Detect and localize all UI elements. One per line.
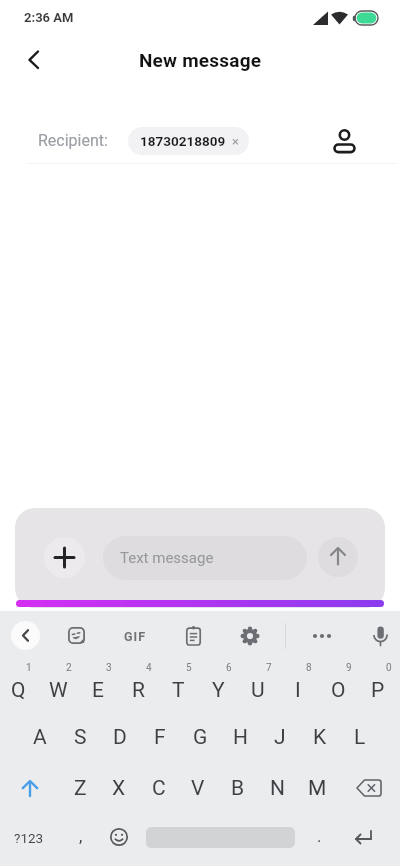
button[interactable]: W — [38, 667, 78, 713]
button[interactable]: M — [297, 765, 337, 811]
staticText: O — [331, 678, 346, 703]
staticText: F — [154, 725, 166, 750]
button[interactable]: Y — [198, 667, 238, 713]
button[interactable]: Q — [0, 667, 38, 713]
staticText: Text message — [120, 549, 214, 567]
button[interactable]: D — [100, 714, 140, 760]
staticText: 4 — [146, 662, 152, 674]
staticText: ?123 — [14, 830, 44, 846]
staticText: J — [274, 725, 286, 750]
staticText: 3 — [106, 662, 112, 674]
staticText: C — [152, 776, 166, 801]
staticText: Q — [11, 678, 26, 703]
button[interactable] — [348, 824, 378, 850]
button[interactable]: O — [318, 667, 358, 713]
button[interactable] — [366, 622, 394, 650]
button[interactable]: A — [20, 714, 60, 760]
button[interactable]: K — [300, 714, 340, 760]
button[interactable]: E — [78, 667, 118, 713]
button[interactable] — [62, 621, 90, 649]
button[interactable]: Z — [60, 765, 100, 811]
staticText: 1 — [26, 662, 32, 674]
staticText: K — [313, 725, 327, 750]
button[interactable]: B — [218, 765, 258, 811]
button[interactable]: J — [260, 714, 300, 760]
button[interactable]: F — [140, 714, 180, 760]
staticText: × — [232, 134, 239, 149]
staticText: 7 — [266, 662, 272, 674]
staticText: Z — [74, 776, 87, 801]
staticText: . — [317, 826, 322, 846]
button[interactable] — [15, 773, 45, 803]
button[interactable]: Text message — [103, 536, 307, 580]
staticText: 2 — [66, 662, 72, 674]
button[interactable]: V — [178, 765, 218, 811]
staticText: 9 — [346, 662, 352, 674]
staticText: E — [92, 678, 104, 703]
staticText: N — [270, 776, 285, 801]
button[interactable] — [18, 44, 50, 76]
button[interactable]: R — [118, 667, 158, 713]
button[interactable] — [308, 622, 336, 650]
button[interactable] — [318, 537, 358, 577]
staticText: V — [191, 776, 205, 801]
button[interactable] — [11, 621, 40, 650]
button[interactable]: G — [180, 714, 220, 760]
staticText: 0 — [386, 662, 392, 674]
button[interactable] — [236, 622, 264, 650]
staticText: G — [193, 725, 208, 750]
staticText: , — [79, 826, 83, 846]
staticText: L — [354, 725, 366, 750]
staticText: 6 — [226, 662, 232, 674]
staticText: D — [113, 725, 127, 750]
staticText: H — [233, 725, 248, 750]
button[interactable]: U — [238, 667, 278, 713]
staticText: U — [251, 678, 265, 703]
staticText: 18730218809 — [140, 133, 226, 149]
staticText: New message — [139, 49, 262, 71]
button[interactable]: P — [358, 667, 398, 713]
button[interactable]: X — [99, 765, 139, 811]
button[interactable]: 18730218809 — [128, 127, 249, 155]
staticText: M — [308, 776, 327, 801]
staticText: Recipient: — [38, 131, 108, 150]
button[interactable]: C — [139, 765, 179, 811]
staticText: T — [172, 678, 185, 703]
button[interactable]: H — [220, 714, 260, 760]
button[interactable]: . — [302, 814, 336, 858]
staticText: 8 — [306, 662, 312, 674]
staticText: 5 — [186, 662, 192, 674]
button[interactable] — [355, 775, 383, 801]
staticText: B — [231, 776, 245, 801]
staticText: X — [112, 776, 126, 801]
button[interactable]: I — [278, 667, 318, 713]
button[interactable]: N — [257, 765, 297, 811]
button[interactable] — [330, 122, 360, 158]
staticText: I — [295, 678, 301, 703]
staticText: GIF — [124, 629, 147, 644]
staticText: A — [33, 725, 47, 750]
button[interactable]: GIF — [119, 622, 151, 650]
staticText: 2:36 AM — [24, 10, 74, 25]
button[interactable]: , — [64, 814, 98, 858]
staticText: W — [49, 678, 68, 703]
button[interactable] — [105, 823, 133, 851]
button[interactable]: T — [158, 667, 198, 713]
button[interactable]: L — [340, 714, 380, 760]
staticText: S — [74, 725, 87, 750]
button[interactable] — [179, 622, 207, 650]
button[interactable] — [44, 537, 85, 578]
staticText: R — [132, 678, 145, 703]
button[interactable]: S — [60, 714, 100, 760]
staticText: P — [371, 678, 385, 703]
button[interactable]: ?123 — [4, 816, 54, 860]
staticText: Y — [212, 678, 225, 703]
